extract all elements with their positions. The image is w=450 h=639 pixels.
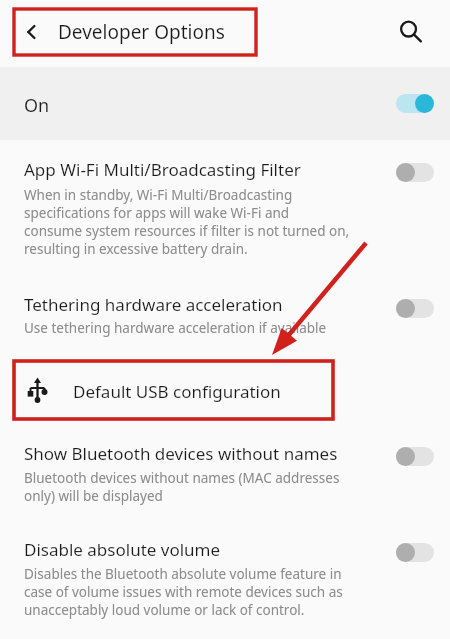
button[interactable]: Back [14, 9, 256, 55]
staticText: Show Bluetooth devices without names [24, 442, 338, 465]
staticText: Disable absolute volume [24, 538, 221, 561]
staticText: Developer Options [58, 19, 225, 45]
button[interactable]: Show Bluetooth devices without names [0, 432, 450, 524]
button[interactable]: Tethering hardware acceleration [0, 285, 450, 353]
button[interactable]: Toggle, off [396, 299, 434, 318]
button[interactable]: Toggle, off [396, 543, 434, 562]
staticText: Tethering hardware acceleration [24, 293, 283, 316]
button[interactable]: Search [391, 12, 429, 50]
staticText: On [24, 93, 50, 118]
staticText: App Wi-Fi Multi/Broadcasting Filter [24, 158, 301, 181]
button[interactable]: Default USB configuration [0, 361, 450, 419]
staticText: When in standby, Wi-Fi Multi/Broadcastin… [24, 186, 394, 258]
staticText: Bluetooth devices without names (MAC add… [24, 469, 394, 505]
button[interactable]: Disable absolute volume [0, 528, 450, 633]
staticText: Use tethering hardware acceleration if a… [24, 319, 327, 337]
other: Back [22, 22, 42, 42]
button[interactable]: App Wi-Fi Multi/Broadcasting Filter [0, 145, 450, 285]
button[interactable]: Toggle, on [396, 94, 434, 113]
button[interactable]: On [0, 67, 450, 140]
staticText: Default USB configuration [73, 380, 281, 403]
button[interactable]: Toggle, off [396, 163, 434, 182]
staticText: Disables the Bluetooth absolute volume f… [24, 565, 404, 619]
button[interactable]: Toggle, off [396, 447, 434, 466]
